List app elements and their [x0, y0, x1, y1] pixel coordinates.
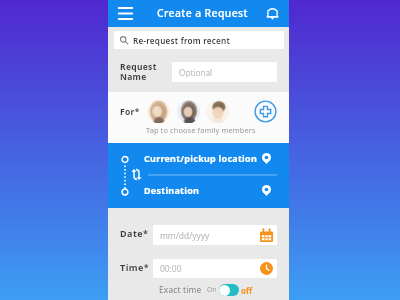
- button[interactable]: Add family member: [254, 100, 277, 123]
- staticText: For*: [120, 106, 140, 118]
- button[interactable]: mm/dd/yyyy: [153, 225, 277, 245]
- staticText: 00:00: [160, 263, 182, 274]
- button[interactable]: [206, 100, 229, 123]
- button[interactable]: [147, 100, 170, 123]
- staticText: off: [241, 285, 253, 296]
- staticText: mm/dd/yyyy: [160, 230, 210, 241]
- staticText: Time*: [120, 261, 150, 273]
- button[interactable]: Optional: [172, 62, 277, 82]
- button[interactable]: Current/pickup location: [108, 147, 289, 169]
- button[interactable]: 00:00: [153, 259, 277, 278]
- staticText: Current/pickup location: [144, 152, 258, 164]
- staticText: Tap to choose family members: [146, 125, 256, 135]
- staticText: Destination: [144, 184, 200, 196]
- staticText: Optional: [179, 67, 213, 78]
- button[interactable]: [177, 100, 200, 123]
- staticText: On: [207, 285, 217, 294]
- button[interactable]: Re-request from recent: [114, 31, 284, 49]
- button[interactable]: Notifications: [267, 7, 278, 20]
- staticText: Re-request from recent: [133, 35, 230, 46]
- staticText: Request Name: [120, 61, 157, 83]
- staticText: Date*: [120, 227, 149, 239]
- staticText: Create a Request: [157, 6, 248, 20]
- staticText: Exact time: [159, 284, 202, 295]
- button[interactable]: Exact time toggle: [219, 284, 239, 296]
- button[interactable]: Swap locations: [132, 169, 141, 180]
- button[interactable]: Destination: [108, 179, 289, 201]
- button[interactable]: Open menu: [116, 4, 135, 23]
